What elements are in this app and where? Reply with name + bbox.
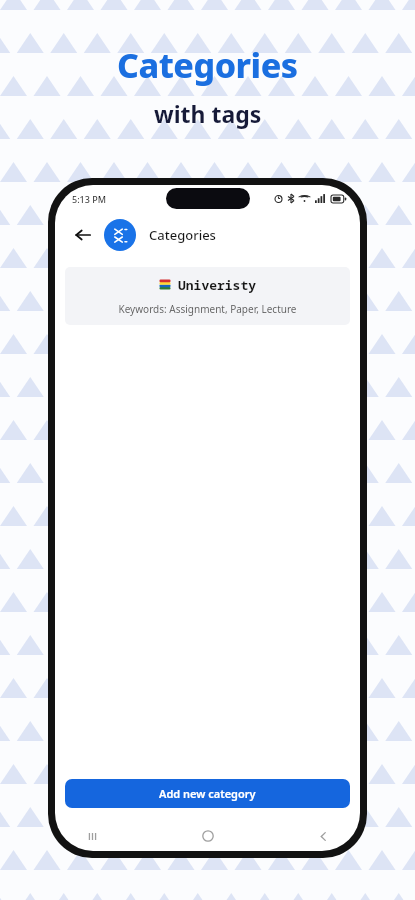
staticText: Add new category — [159, 786, 256, 801]
button[interactable]: Recent apps — [77, 821, 107, 851]
staticText: 5:13 PM — [72, 193, 106, 205]
button[interactable]: Add new category — [65, 779, 350, 808]
button[interactable]: Back — [68, 220, 98, 250]
button[interactable]: Home — [193, 821, 223, 851]
staticText: Categories — [149, 226, 216, 244]
staticText: Keywords: Assignment, Paper, Lecture — [118, 302, 297, 316]
staticText: with tags — [154, 98, 262, 129]
button[interactable]: Univeristy — [65, 267, 350, 325]
button[interactable]: App logo — [104, 219, 136, 251]
staticText: Categories — [117, 42, 298, 88]
button[interactable]: Back — [308, 821, 338, 851]
staticText: Univeristy — [178, 276, 257, 294]
